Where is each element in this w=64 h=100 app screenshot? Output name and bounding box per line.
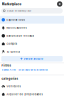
staticText: Categorías <box>2 77 18 80</box>
staticText: Vehículos <box>6 85 20 88</box>
staticText: Filtros <box>2 64 11 67</box>
staticText: Buscar en Marketplace <box>7 9 31 12</box>
staticText: Alquiler de propiedades <box>6 93 42 96</box>
staticText: Bandeja de entrada <box>6 34 33 37</box>
button[interactable]: Buenos Aires · En un radio de 65 kilómet… <box>0 68 64 72</box>
staticText: Explorar todo <box>6 18 25 21</box>
button[interactable]: Alquiler de propiedades <box>0 90 64 98</box>
button[interactable]: Bandeja de entrada <box>0 32 64 40</box>
button[interactable]: Vehículos <box>0 82 64 90</box>
staticText: Notificaciones <box>6 26 26 29</box>
button[interactable]: Explorar todo <box>0 16 64 24</box>
staticText: Buenos Aires · En un radio de 65 kilómet… <box>2 68 48 71</box>
staticText: Vender artículo <box>24 57 44 60</box>
staticText: Marketplace <box>2 2 22 6</box>
button[interactable]: Buscar en Marketplace <box>1 8 63 13</box>
button[interactable]: Tu perfil <box>57 1 62 7</box>
button[interactable]: Compra <box>0 40 64 48</box>
button[interactable]: Vender artículo <box>1 56 63 61</box>
button[interactable]: Tu cuenta <box>0 48 64 56</box>
staticText: Compra <box>6 42 16 45</box>
button[interactable]: Notificaciones <box>0 24 64 32</box>
staticText: Tu cuenta <box>6 50 19 53</box>
